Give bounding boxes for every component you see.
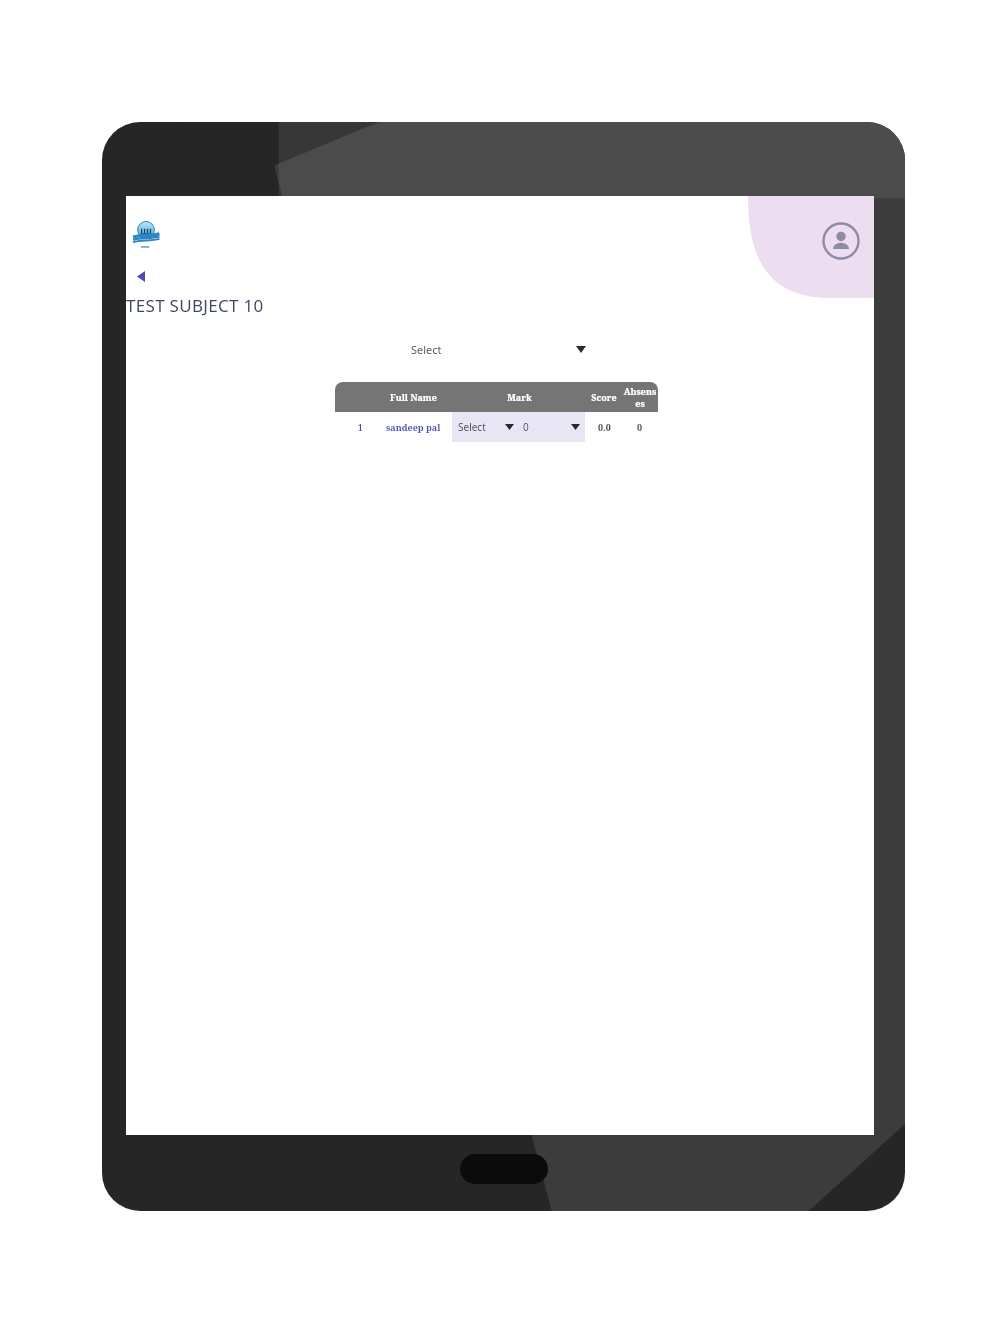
staticText: Score [591,391,617,403]
staticText: Mark [507,391,532,403]
staticText: Full Name [390,391,437,403]
staticText: Absenses [622,385,658,409]
staticText: 0 [523,420,529,434]
button[interactable]: 0 [519,412,586,442]
button[interactable]: Logo [132,220,160,250]
staticText: 0 [637,421,643,433]
staticText: Select [411,342,442,357]
staticText: TEST SUBJECT 10 [126,294,264,317]
button[interactable]: Home [460,1154,548,1184]
button[interactable]: Select [411,336,586,362]
staticText: sandeep pal [386,421,441,433]
button[interactable]: Back [130,266,152,286]
staticText: Select [458,420,486,434]
staticText: 0.0 [598,421,611,433]
staticText: 1 [358,422,363,433]
button[interactable]: Profile [822,222,860,260]
button[interactable]: Select [453,412,519,442]
